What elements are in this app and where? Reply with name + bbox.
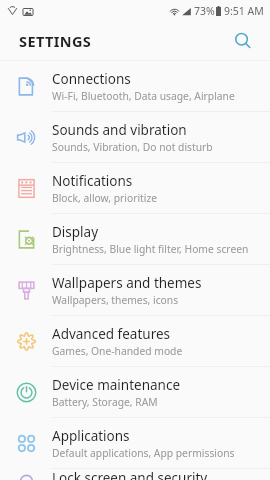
staticText: Sounds and vibration xyxy=(52,121,187,139)
button[interactable]: Lock screen and security xyxy=(0,469,270,480)
button[interactable]: Sounds and vibration xyxy=(0,112,270,162)
staticText: Display xyxy=(52,223,99,241)
staticText: Connections xyxy=(52,70,131,88)
staticText: 73% xyxy=(194,4,215,18)
button[interactable]: Device maintenance xyxy=(0,367,270,417)
staticText: Brightness, Blue light filter, Home scre… xyxy=(52,242,249,256)
button[interactable]: Search xyxy=(227,25,259,57)
button[interactable]: Applications xyxy=(0,418,270,468)
staticText: Notifications xyxy=(52,172,133,190)
staticText: Battery, Storage, RAM xyxy=(52,395,158,409)
staticText: Block, allow, prioritize xyxy=(52,191,158,205)
staticText: Advanced features xyxy=(52,325,171,343)
staticText: Games, One-handed mode xyxy=(52,344,183,358)
staticText: Wallpapers and themes xyxy=(52,274,202,292)
staticText: SETTINGS xyxy=(19,31,92,51)
staticText: Sounds, Vibration, Do not disturb xyxy=(52,140,213,154)
staticText: Default applications, App permissions xyxy=(52,446,235,460)
button[interactable]: Notifications xyxy=(0,163,270,213)
button[interactable]: Display xyxy=(0,214,270,264)
staticText: Applications xyxy=(52,427,130,445)
button[interactable]: Advanced features xyxy=(0,316,270,366)
staticText: Lock screen and security xyxy=(52,469,208,480)
button[interactable]: Wallpapers and themes xyxy=(0,265,270,315)
staticText: Device maintenance xyxy=(52,376,181,394)
staticText: Wallpapers, themes, icons xyxy=(52,293,179,307)
staticText: 9:51 AM xyxy=(224,4,264,18)
button[interactable]: Connections xyxy=(0,61,270,111)
staticText: Wi-Fi, Bluetooth, Data usage, Airplane m… xyxy=(52,89,264,103)
